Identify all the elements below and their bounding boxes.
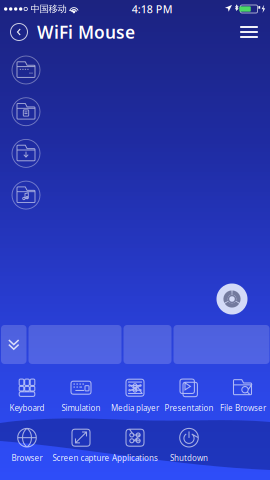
staticText: Presentation [164, 403, 213, 413]
button[interactable]: Screen capture [54, 424, 108, 466]
staticText: Media player [111, 403, 159, 413]
button[interactable]: Shutdown [162, 424, 216, 466]
button[interactable]: Shortcut folder [8, 177, 44, 213]
button[interactable]: Shortcut folder [8, 135, 44, 171]
staticText: 4:18 PM [132, 2, 173, 16]
staticText: Browser [11, 453, 42, 463]
button[interactable]: Expand [1, 325, 26, 364]
button[interactable]: Shortcut folder [8, 52, 44, 88]
staticText: Keyboard [9, 403, 44, 413]
button[interactable]: Media player [108, 374, 162, 416]
staticText: File Browser [220, 403, 266, 413]
button[interactable]: Chrome [214, 281, 250, 317]
button[interactable]: Shortcut folder [8, 94, 44, 130]
staticText: Screen capture [52, 453, 109, 463]
button[interactable]: Keyboard [0, 374, 54, 416]
button[interactable]: Presentation [162, 374, 216, 416]
button[interactable]: Middle mouse button [123, 325, 171, 364]
button[interactable]: Applications [108, 424, 162, 466]
button[interactable]: Left mouse button [28, 325, 121, 364]
staticText: Applications [112, 453, 158, 463]
button[interactable]: File Browser [216, 374, 270, 416]
staticText: Shutdown [170, 453, 208, 463]
button[interactable]: Simulation [54, 374, 108, 416]
button[interactable]: Browser [0, 424, 54, 466]
staticText: 中国移动 [27, 3, 69, 15]
staticText: WiFi Mouse [37, 20, 135, 43]
button[interactable]: Back [4, 18, 34, 46]
button[interactable]: Menu [232, 18, 266, 46]
staticText: Simulation [61, 403, 100, 413]
